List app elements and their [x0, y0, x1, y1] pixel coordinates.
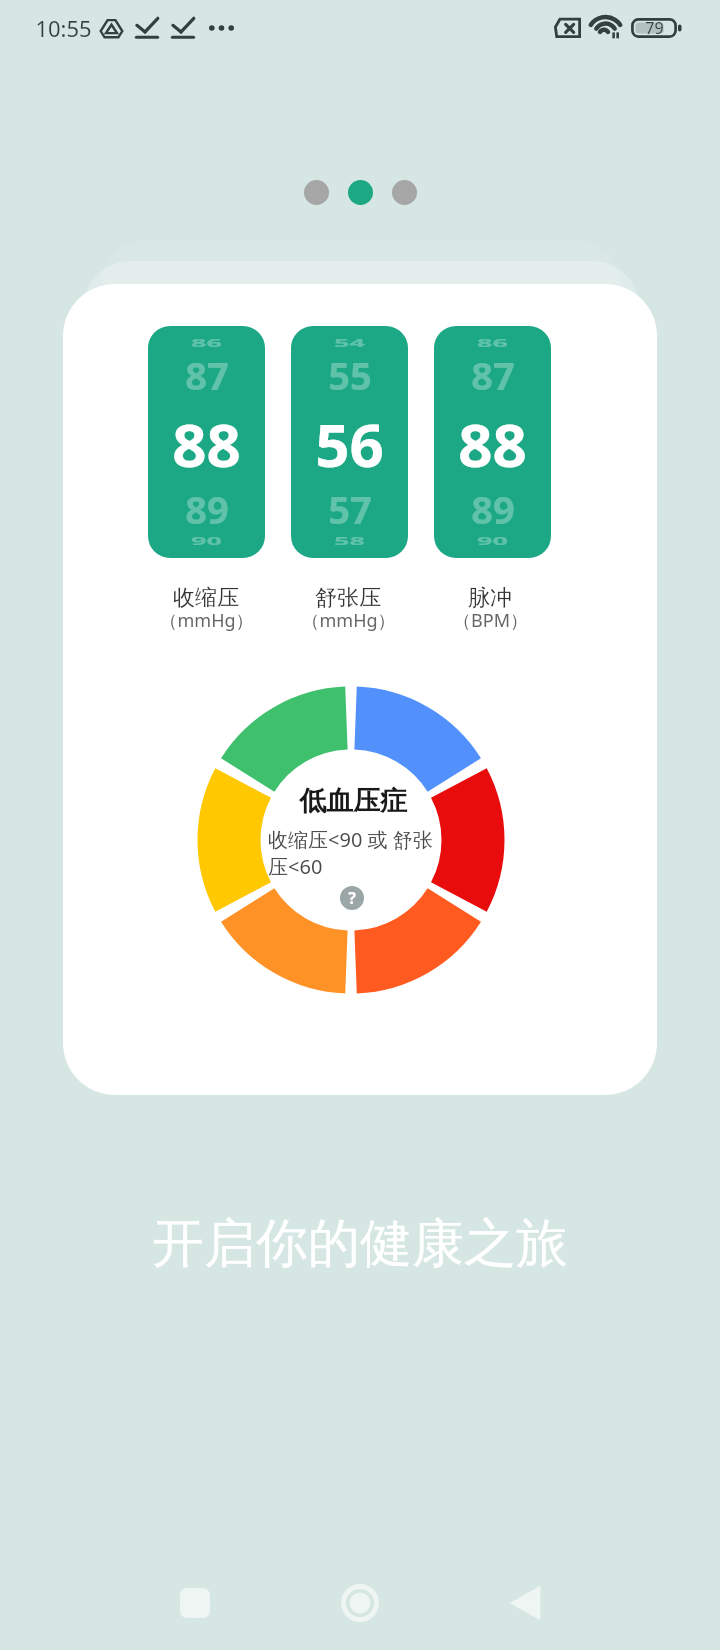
button[interactable]: Back — [495, 1573, 555, 1633]
staticText: 收缩压 — [173, 584, 239, 612]
staticText: 脉冲 — [468, 584, 512, 612]
staticText: （mmHg） — [301, 608, 396, 633]
staticText: 56 — [315, 403, 384, 485]
staticText: 开启你的健康之旅 — [0, 1211, 720, 1277]
button[interactable]: 86 — [434, 326, 551, 558]
staticText: 58 — [334, 534, 365, 549]
staticText: （BPM） — [453, 608, 528, 633]
staticText: 10:55 — [35, 13, 92, 43]
staticText: 89 — [471, 483, 515, 535]
staticText: 54 — [334, 336, 365, 351]
staticText: 57 — [328, 483, 372, 535]
staticText: ? — [348, 887, 356, 909]
staticText: 88 — [458, 403, 527, 485]
button[interactable]: Recents — [165, 1573, 225, 1633]
staticText: 86 — [477, 336, 508, 351]
staticText: 90 — [477, 534, 508, 549]
button[interactable]: 86 — [148, 326, 265, 558]
staticText: 低血压症 — [299, 784, 407, 818]
button[interactable]: 54 — [291, 326, 408, 558]
staticText: 79 — [645, 17, 664, 39]
staticText: 89 — [185, 483, 229, 535]
staticText: 86 — [191, 336, 222, 351]
staticText: 90 — [191, 534, 222, 549]
staticText: 55 — [328, 349, 372, 401]
button[interactable]: Help — [340, 886, 364, 910]
button[interactable]: Home — [330, 1573, 390, 1633]
staticText: 87 — [471, 349, 515, 401]
staticText: 88 — [172, 403, 241, 485]
staticText: （mmHg） — [159, 608, 254, 633]
staticText: 舒张压 — [315, 584, 381, 612]
staticText: 87 — [185, 349, 229, 401]
staticText: 收缩压<90 或 舒张 压<60 — [268, 826, 436, 880]
